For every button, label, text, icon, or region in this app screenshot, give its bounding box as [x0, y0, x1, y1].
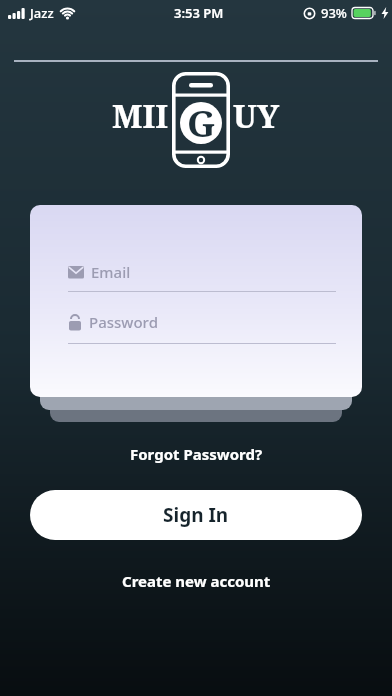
staticText: MII [112, 94, 169, 138]
staticText: Jazz [30, 4, 54, 22]
staticText: 3:53 PM [174, 4, 224, 22]
staticText: Password [89, 312, 158, 332]
button[interactable]: Sign In [30, 490, 362, 540]
staticText: UY [233, 94, 280, 138]
button[interactable]: Forgot Password? [130, 444, 263, 464]
staticText: 93% [321, 4, 347, 22]
button[interactable]: Password [68, 312, 158, 332]
button[interactable]: Create new account [122, 571, 271, 591]
staticText: Email [91, 262, 131, 282]
button[interactable]: Email [68, 262, 131, 282]
staticText: Forgot Password? [130, 444, 263, 464]
staticText: Sign In [163, 502, 229, 528]
staticText: G [187, 97, 216, 139]
staticText: Create new account [122, 571, 271, 591]
